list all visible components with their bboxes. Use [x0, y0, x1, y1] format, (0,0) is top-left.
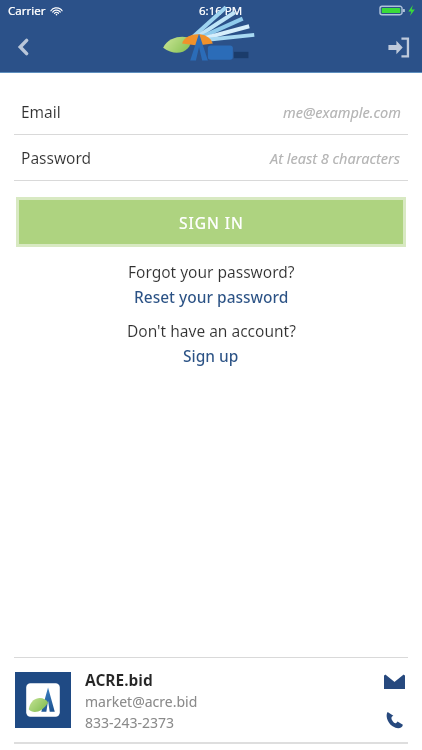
button[interactable]: Password: [0, 135, 422, 181]
staticText: market@acre.bid: [85, 692, 198, 711]
button[interactable]: Sign up: [177, 344, 245, 367]
staticText: At least 8 characters: [270, 148, 401, 168]
button[interactable]: ACRE.bid logo: [15, 672, 71, 728]
staticText: Sign up: [183, 345, 239, 366]
staticText: ACRE.bid: [85, 669, 153, 690]
button[interactable]: Email: [381, 668, 407, 694]
button[interactable]: SIGN IN: [19, 200, 403, 244]
staticText: SIGN IN: [179, 212, 244, 233]
staticText: 6:16 PM: [199, 3, 243, 19]
staticText: Reset your password: [134, 286, 289, 307]
button[interactable]: Sign in: [374, 23, 422, 71]
staticText: Password: [21, 147, 92, 168]
staticText: Forgot your password?: [128, 261, 295, 282]
staticText: me@example.com: [283, 102, 401, 122]
button[interactable]: Reset your password: [128, 285, 295, 308]
staticText: Carrier: [8, 3, 46, 19]
button[interactable]: Call: [381, 706, 407, 732]
button[interactable]: Email: [0, 89, 422, 135]
button[interactable]: Back: [0, 23, 48, 71]
staticText: 833-243-2373: [85, 713, 175, 732]
staticText: Don't have an account?: [127, 320, 296, 341]
staticText: Email: [21, 101, 61, 122]
